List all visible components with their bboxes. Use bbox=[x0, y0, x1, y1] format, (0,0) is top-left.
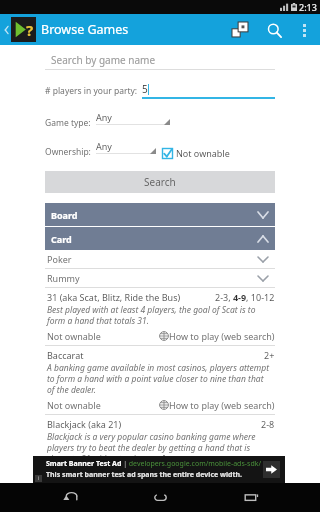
button[interactable]: Card bbox=[45, 227, 275, 250]
staticText: Best played with at least 4 players, the… bbox=[47, 304, 273, 326]
staticText: How to play (web search) bbox=[169, 399, 275, 411]
button[interactable]: 31 (aka Scat, Blitz, Ride the Bus) bbox=[45, 288, 275, 346]
button[interactable]: How to play (web search) bbox=[159, 330, 275, 342]
staticText: # players in your party: bbox=[45, 85, 138, 97]
staticText: ? bbox=[26, 20, 34, 40]
button[interactable]: How to play (web search) bbox=[159, 399, 275, 411]
button[interactable]: Open ad bbox=[263, 461, 280, 478]
button[interactable]: Advertisement bbox=[33, 456, 285, 483]
staticText: 2-3, 4-9, 10-12 bbox=[215, 291, 275, 303]
button[interactable]: Random game bbox=[227, 17, 253, 43]
staticText: 2-8 bbox=[261, 418, 275, 430]
staticText: Card bbox=[51, 233, 72, 245]
button[interactable]: Blackjack (aka 21) bbox=[45, 415, 275, 456]
staticText: i bbox=[38, 475, 40, 482]
button[interactable]: Search bbox=[45, 171, 275, 193]
button[interactable]: Baccarat bbox=[45, 346, 275, 415]
staticText: 2+ bbox=[264, 349, 275, 361]
staticText: Any bbox=[96, 111, 112, 123]
staticText: Baccarat bbox=[47, 349, 84, 361]
button[interactable]: Board bbox=[45, 203, 275, 226]
staticText: This smart banner test ad spans the enti… bbox=[46, 470, 243, 480]
staticText: Rummy bbox=[47, 272, 80, 284]
staticText: Poker bbox=[47, 253, 72, 265]
staticText: Smart Banner Test Ad | developers.google… bbox=[46, 459, 262, 469]
staticText: How to play (web search) bbox=[169, 330, 275, 342]
staticText: Blackjack (aka 21) bbox=[47, 418, 122, 430]
staticText: A banking game available in most casinos… bbox=[47, 362, 273, 395]
staticText: Browse Games bbox=[41, 21, 129, 38]
button[interactable]: Not ownable bbox=[162, 147, 230, 159]
staticText: 5 bbox=[142, 82, 148, 96]
staticText: 2:13 bbox=[299, 1, 317, 13]
button[interactable]: Poker bbox=[45, 250, 275, 268]
staticText: Not ownable bbox=[176, 147, 230, 159]
button[interactable]: Any bbox=[96, 140, 156, 159]
button[interactable]: Home bbox=[139, 483, 181, 512]
staticText: Search bbox=[144, 175, 176, 189]
button[interactable]: More options bbox=[293, 19, 315, 41]
button[interactable]: Search bbox=[261, 17, 287, 43]
staticText: Blackjack is a very popular casino banki… bbox=[47, 431, 273, 456]
staticText: Any bbox=[96, 140, 112, 152]
button[interactable]: Recent apps bbox=[230, 483, 272, 512]
button[interactable]: Any bbox=[96, 111, 170, 130]
staticText: Board bbox=[51, 209, 78, 221]
staticText: Not ownable bbox=[47, 330, 101, 342]
staticText: 31 (aka Scat, Blitz, Ride the Bus) bbox=[47, 291, 181, 303]
staticText: Search by game name bbox=[51, 53, 156, 67]
staticText: Not ownable bbox=[47, 399, 101, 411]
staticText: Ownership: bbox=[45, 146, 91, 158]
button[interactable]: Rummy bbox=[45, 269, 275, 287]
button[interactable]: Back bbox=[49, 483, 91, 512]
staticText: Game type: bbox=[45, 117, 91, 129]
